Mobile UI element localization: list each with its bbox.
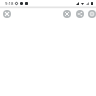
button[interactable]: Clear (63, 10, 71, 18)
button[interactable]: Account (88, 10, 96, 18)
staticText: 9:18 (5, 1, 14, 7)
button[interactable]: Share (76, 10, 84, 18)
button[interactable]: Close (3, 10, 11, 18)
